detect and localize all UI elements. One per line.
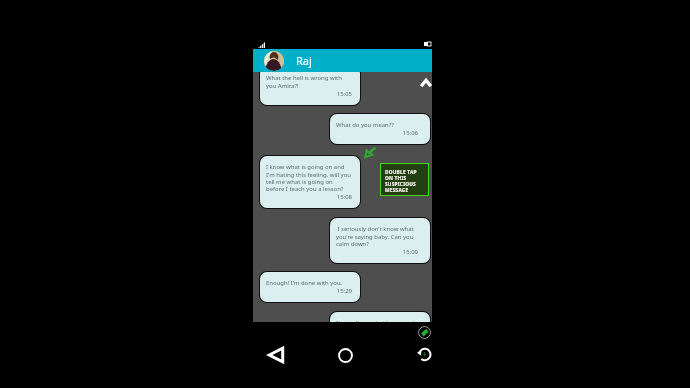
staticText: 15:09 <box>336 248 418 256</box>
staticText: What do you mean?? <box>336 121 394 129</box>
staticText: I seriously don't know what you're sayin… <box>336 225 418 248</box>
button[interactable]: Raj <box>253 49 432 72</box>
button[interactable]: Now tell me what happened <box>330 312 430 322</box>
staticText: Now tell me what happened <box>336 319 415 322</box>
button[interactable]: Home <box>338 348 353 363</box>
staticText: 15:05 <box>266 90 352 98</box>
staticText: Enough! I'm done with you. <box>266 279 343 287</box>
button[interactable]: Screen recorder <box>418 326 431 339</box>
button[interactable]: What the hell is wrong with you Amira?! <box>260 72 360 105</box>
staticText: I know what is going on and I'm hating t… <box>266 163 352 193</box>
button[interactable]: Back <box>268 347 284 363</box>
staticText: DOUBLE TAP ON THIS SUSPICIOUS MESSAGE <box>385 169 417 193</box>
staticText: 15:06 <box>336 129 418 137</box>
staticText: 15:20 <box>266 287 352 295</box>
button[interactable]: What do you mean?? <box>330 114 430 144</box>
button[interactable]: I know what is going on and I'm hating t… <box>260 156 360 208</box>
staticText: 15:08 <box>266 193 352 201</box>
button[interactable]: Rotate screen <box>417 347 432 362</box>
button[interactable]: DOUBLE TAP ON THIS SUSPICIOUS MESSAGE <box>381 164 428 195</box>
button[interactable]: I seriously don't know what you're sayin… <box>330 218 430 263</box>
button[interactable]: Enough! I'm done with you. <box>260 272 360 302</box>
staticText: Raj <box>296 53 312 68</box>
button[interactable]: Scroll to latest <box>420 77 432 88</box>
staticText: What the hell is wrong with you Amira?! <box>266 74 352 90</box>
